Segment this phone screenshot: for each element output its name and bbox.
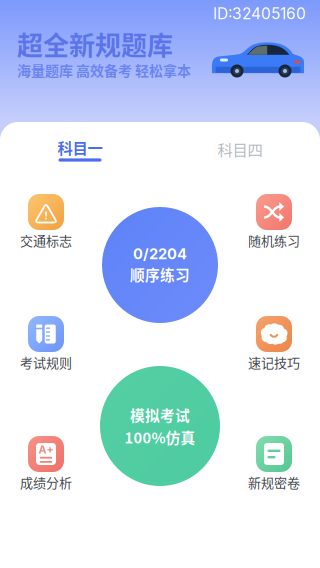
staticText: 随机练习 <box>248 230 300 249</box>
staticText: 成绩分析 <box>20 472 72 491</box>
button[interactable]: 模拟考试 <box>100 366 220 486</box>
button[interactable]: 新规密卷 <box>236 436 312 488</box>
staticText: 科目四 <box>217 138 262 160</box>
staticText: A+ <box>38 443 53 456</box>
staticText: 顺序练习 <box>130 264 190 285</box>
staticText: 100%仿真 <box>124 426 195 448</box>
staticText: 速记技巧 <box>248 352 300 371</box>
staticText: ID:32405160 <box>213 4 306 23</box>
button[interactable]: 速记技巧 <box>236 316 312 368</box>
button[interactable]: 考试规则 <box>8 316 84 368</box>
staticText: 考试规则 <box>20 352 72 371</box>
button[interactable]: 科目四 <box>180 131 300 167</box>
staticText: 科目一 <box>57 136 102 158</box>
button[interactable]: 0/2204 <box>102 207 218 323</box>
staticText: 交通标志 <box>20 230 72 249</box>
button[interactable]: A+ <box>8 436 84 488</box>
staticText: 0/2204 <box>133 245 187 263</box>
button[interactable]: 交通标志 <box>8 194 84 246</box>
staticText: 超全新规题库 <box>17 25 173 63</box>
button[interactable]: 科目一 <box>20 132 140 168</box>
staticText: 模拟考试 <box>130 404 190 425</box>
staticText: 新规密卷 <box>248 472 300 491</box>
button[interactable]: 随机练习 <box>236 194 312 246</box>
staticText: 海量题库 高效备考 轻松拿本 <box>17 60 191 80</box>
